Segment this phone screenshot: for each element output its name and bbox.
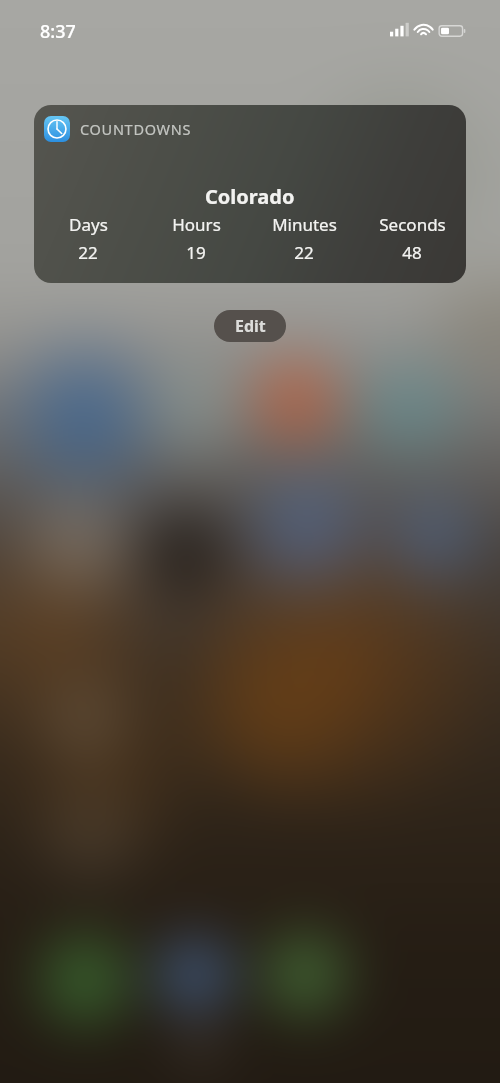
button[interactable]: Edit: [214, 310, 286, 342]
staticText: 22: [78, 241, 98, 264]
staticText: Days: [69, 213, 108, 236]
staticText: Hours: [172, 213, 221, 236]
staticText: Colorado: [205, 183, 295, 210]
button[interactable]: COUNTDOWNS: [34, 105, 466, 283]
staticText: Minutes: [272, 213, 337, 236]
staticText: 8:37: [40, 19, 76, 44]
staticText: Edit: [235, 315, 266, 337]
staticText: Seconds: [379, 213, 446, 236]
staticText: COUNTDOWNS: [80, 119, 192, 139]
staticText: 22: [294, 241, 314, 264]
staticText: 48: [402, 241, 422, 264]
staticText: 19: [186, 241, 206, 264]
